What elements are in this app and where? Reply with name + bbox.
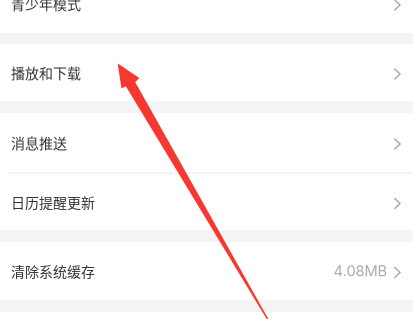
staticText: 日历提醒更新 [11, 192, 95, 212]
button[interactable]: 消息推送 [0, 113, 413, 172]
button[interactable]: 青少年模式 [0, 0, 413, 33]
staticText: 播放和下载 [11, 62, 81, 83]
staticText: 4.08MB [333, 262, 387, 280]
button[interactable]: 清除系统缓存 [0, 242, 413, 300]
button[interactable]: 日历提醒更新 [0, 174, 413, 230]
staticText: 青少年模式 [11, 0, 81, 14]
button[interactable]: 播放和下载 [0, 44, 413, 101]
staticText: 消息推送 [11, 132, 67, 153]
staticText: 清除系统缓存 [11, 261, 95, 281]
